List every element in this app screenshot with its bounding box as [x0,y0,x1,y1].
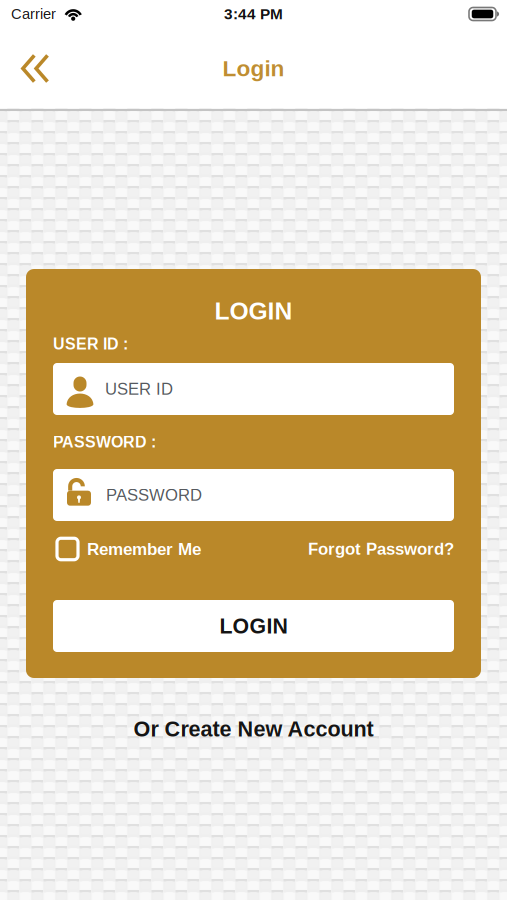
staticText: Remember Me [87,539,201,559]
staticText: USER ID [105,380,173,398]
staticText: Carrier [11,6,56,22]
staticText: Or Create New Account [133,717,373,741]
button[interactable]: Remember Me [53,536,201,562]
staticText: PASSWORD [106,486,202,504]
staticText: PASSWORD : [53,433,156,451]
button[interactable]: LOGIN [53,600,454,652]
button[interactable]: Back [4,42,66,94]
staticText: LOGIN [219,614,287,638]
button[interactable]: Or Create New Account [133,714,373,744]
staticText: Login [222,56,284,81]
button[interactable]: Forgot Password? [308,536,454,562]
staticText: USER ID : [53,335,128,353]
staticText: Forgot Password? [308,540,454,558]
staticText: 3:44 PM [224,5,283,22]
staticText: LOGIN [214,297,292,325]
